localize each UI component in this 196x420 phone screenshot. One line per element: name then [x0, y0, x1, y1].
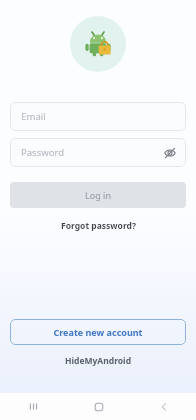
button[interactable]: Password [10, 138, 186, 167]
button[interactable]: Create new account [10, 319, 186, 345]
button[interactable]: Show password [160, 143, 180, 163]
staticText: Password [21, 146, 64, 159]
staticText: Forgot password? [61, 220, 136, 232]
button[interactable]: Back [131, 393, 196, 420]
staticText: Log in [85, 189, 111, 201]
button[interactable]: Email [10, 102, 186, 131]
staticText: Email [21, 110, 46, 123]
button[interactable]: Recent apps [0, 393, 66, 420]
button[interactable]: Log in [10, 182, 186, 208]
button[interactable]: Forgot password? [53, 217, 144, 235]
staticText: HideMyAndroid [65, 355, 131, 367]
button[interactable]: Home [66, 393, 131, 420]
staticText: Create new account [53, 326, 143, 338]
